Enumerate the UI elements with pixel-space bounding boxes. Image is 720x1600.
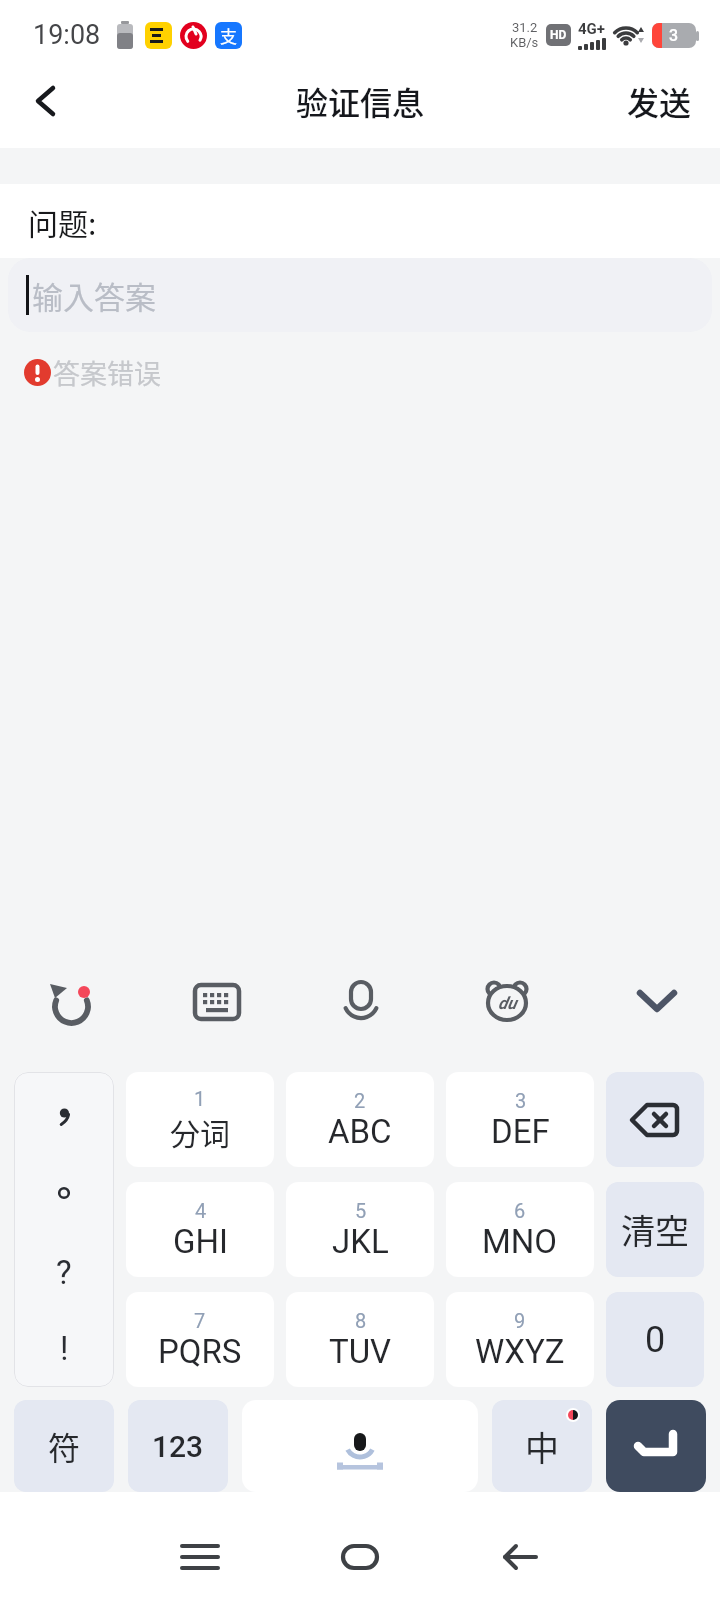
staticText: 6 — [514, 1199, 526, 1222]
button[interactable]: 4 — [126, 1182, 274, 1277]
staticText: 8 — [355, 1309, 367, 1332]
staticText: 5 — [355, 1199, 367, 1222]
staticText: ? — [56, 1253, 72, 1287]
staticText: 发送 — [627, 78, 692, 124]
staticText: TUV — [329, 1332, 392, 1371]
staticText: 3 — [515, 1089, 527, 1112]
staticText: 2 — [354, 1089, 366, 1112]
staticText: 1 — [194, 1087, 206, 1110]
button[interactable]: ? — [14, 1072, 114, 1387]
staticText: ! — [60, 1329, 69, 1363]
staticText: MNO — [482, 1222, 558, 1261]
staticText: 清空 — [621, 1205, 689, 1254]
button[interactable]: 0 — [606, 1292, 704, 1387]
staticText: KB/s — [510, 35, 539, 50]
button[interactable] — [341, 1544, 379, 1570]
staticText: 9 — [514, 1309, 526, 1332]
button[interactable]: 3 — [446, 1072, 594, 1167]
staticText: PQRS — [158, 1332, 242, 1371]
staticText: 7 — [194, 1309, 206, 1332]
button[interactable] — [606, 1072, 704, 1167]
button[interactable]: 9 — [446, 1292, 594, 1387]
button[interactable] — [193, 982, 241, 1022]
button[interactable]: 输入答案 — [8, 258, 712, 332]
staticText: 分词 — [170, 1110, 230, 1153]
staticText: du — [498, 993, 517, 1013]
staticText: 123 — [152, 1429, 204, 1464]
staticText: 问题: — [28, 200, 97, 243]
button[interactable] — [24, 79, 68, 123]
staticText: 4 — [195, 1199, 207, 1222]
button[interactable] — [502, 1544, 538, 1570]
staticText: 中 — [525, 1422, 559, 1471]
button[interactable] — [242, 1400, 478, 1492]
staticText: 3 — [669, 26, 679, 45]
staticText: HD — [550, 28, 567, 42]
staticText: 符 — [48, 1423, 81, 1469]
staticText: GHI — [173, 1222, 228, 1261]
button[interactable]: du — [481, 978, 533, 1026]
staticText: 0 — [645, 1319, 666, 1361]
staticText: 19:08 — [33, 19, 101, 51]
button[interactable]: 中 — [492, 1400, 592, 1492]
button[interactable]: 8 — [286, 1292, 434, 1387]
staticText: JKL — [332, 1222, 389, 1261]
staticText: 输入答案 — [32, 273, 156, 318]
button[interactable]: 清空 — [606, 1182, 704, 1277]
button[interactable]: 6 — [446, 1182, 594, 1277]
staticText: 答案错误 — [53, 353, 161, 392]
button[interactable]: 123 — [128, 1400, 228, 1492]
button[interactable] — [40, 978, 92, 1026]
button[interactable]: 符 — [14, 1400, 114, 1492]
button[interactable]: 1 — [126, 1072, 274, 1167]
staticText: 31.2 — [512, 20, 538, 35]
staticText: 支 — [220, 23, 237, 48]
button[interactable]: 发送 — [627, 78, 692, 124]
staticText: ABC — [328, 1112, 392, 1151]
button[interactable] — [606, 1400, 706, 1492]
button[interactable]: 7 — [126, 1292, 274, 1387]
button[interactable] — [182, 1544, 218, 1570]
staticText: 4G+ — [578, 20, 606, 38]
staticText: DEF — [491, 1112, 550, 1151]
button[interactable]: 5 — [286, 1182, 434, 1277]
button[interactable] — [634, 987, 680, 1017]
staticText: WXYZ — [475, 1332, 565, 1371]
staticText: 验证信息 — [296, 78, 425, 124]
button[interactable] — [342, 980, 380, 1024]
button[interactable]: 2 — [286, 1072, 434, 1167]
